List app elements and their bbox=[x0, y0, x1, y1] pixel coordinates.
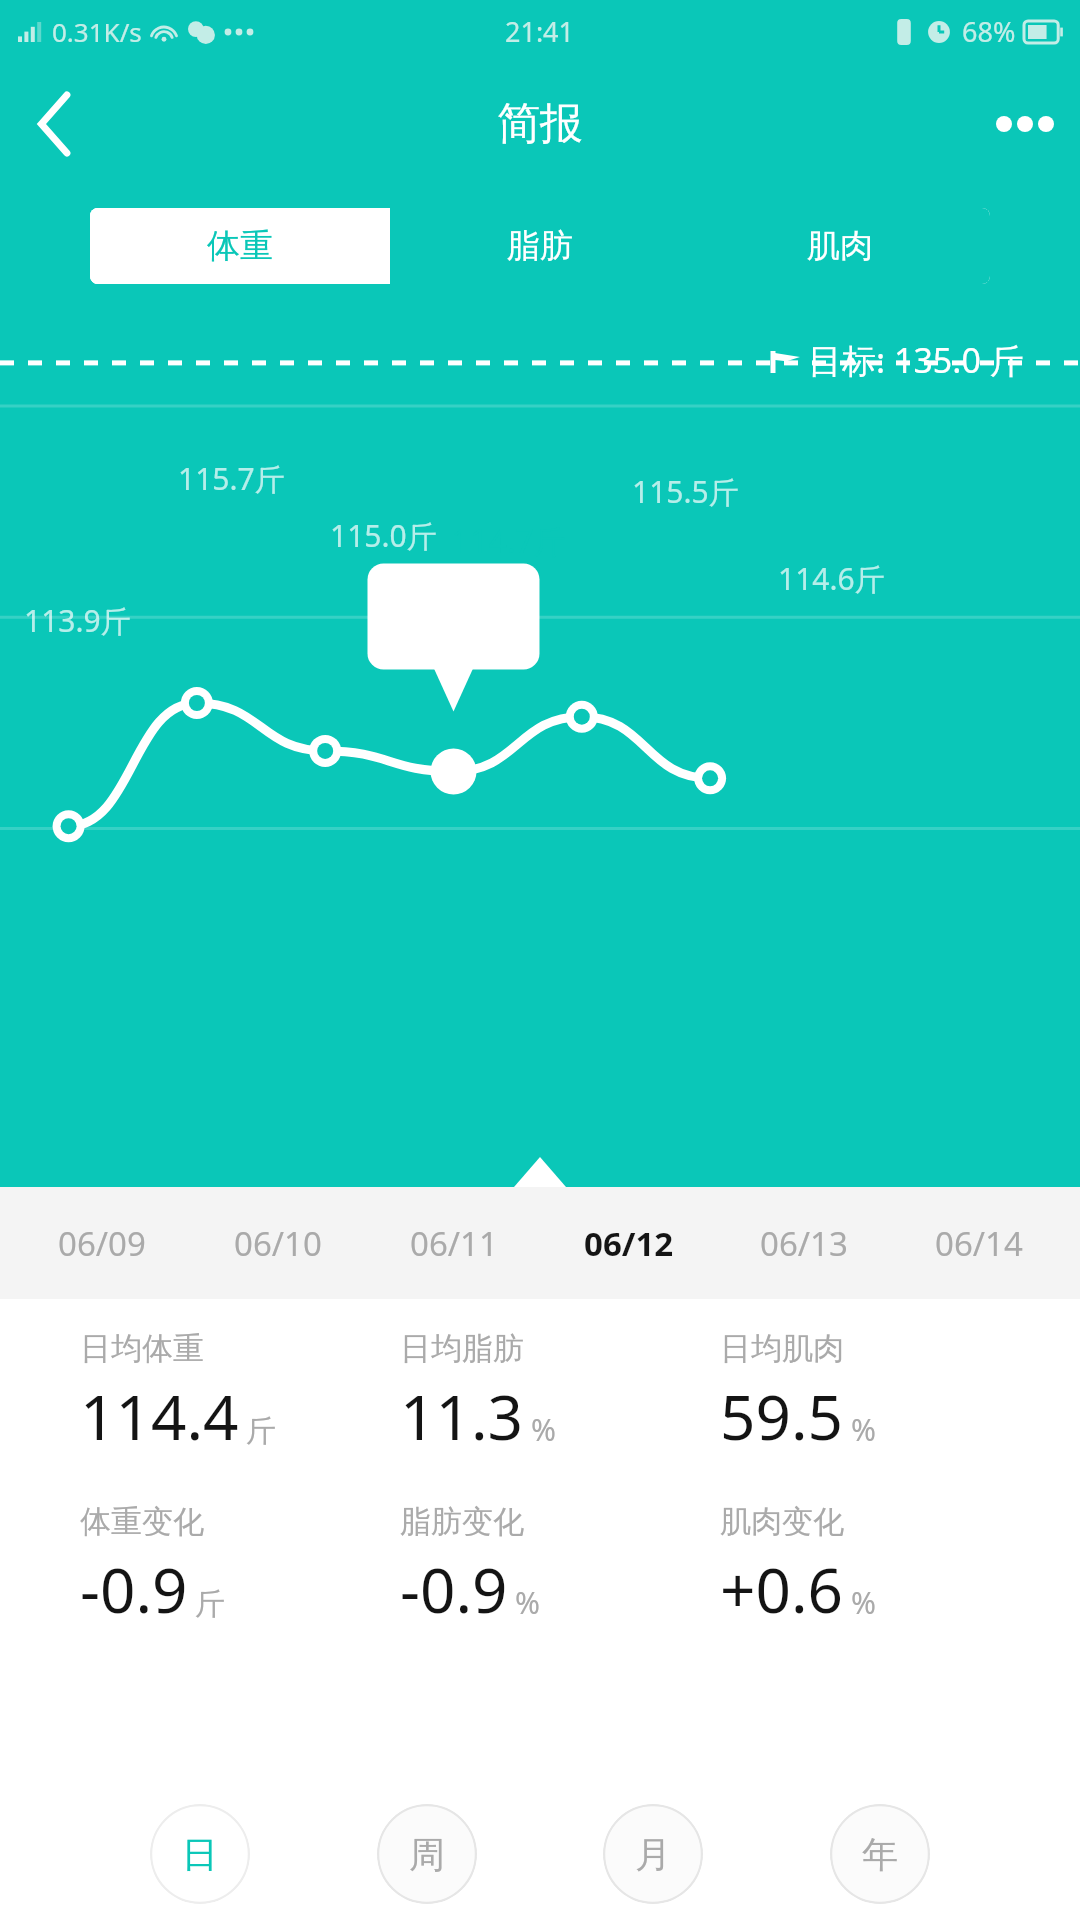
staticText: 脂肪 bbox=[507, 225, 573, 267]
staticText: 06/14 bbox=[935, 1221, 1023, 1266]
staticText: 体重 bbox=[207, 225, 273, 267]
staticText: 11.3 bbox=[400, 1374, 524, 1458]
staticText: 06/10 bbox=[234, 1221, 322, 1266]
staticText: 115.7斤 bbox=[178, 458, 285, 499]
staticText: 月 bbox=[635, 1832, 671, 1877]
staticText: 日 bbox=[182, 1832, 218, 1877]
staticText: 114.6斤 bbox=[778, 558, 885, 599]
button[interactable]: 体重 bbox=[90, 208, 390, 284]
button[interactable]: 06/14 bbox=[891, 1187, 1066, 1299]
staticText: 115.5斤 bbox=[632, 471, 739, 512]
staticText: 115.0斤 bbox=[330, 515, 437, 556]
button[interactable]: 周 bbox=[377, 1804, 477, 1904]
staticText: 06/12 bbox=[584, 1221, 674, 1266]
staticText: 68% bbox=[962, 13, 1016, 50]
staticText: % bbox=[851, 1582, 876, 1623]
staticText: 体重变化 bbox=[80, 1502, 204, 1541]
staticText: 肌肉 bbox=[807, 225, 873, 267]
staticText: 113.9斤 bbox=[24, 600, 131, 641]
staticText: 114.4 bbox=[80, 1374, 239, 1458]
staticText: % bbox=[851, 1409, 876, 1450]
staticText: 年 bbox=[862, 1832, 898, 1877]
button[interactable]: 脂肪 bbox=[392, 210, 688, 282]
button[interactable]: 06/13 bbox=[716, 1187, 891, 1299]
staticText: 日均体重 bbox=[80, 1329, 204, 1368]
staticText: % bbox=[531, 1409, 556, 1450]
button[interactable]: 06/09 bbox=[14, 1187, 190, 1299]
staticText: -0.9 bbox=[400, 1547, 508, 1631]
button[interactable]: 日 bbox=[150, 1804, 250, 1904]
staticText: -0.9 bbox=[80, 1547, 188, 1631]
button[interactable]: 月 bbox=[603, 1804, 703, 1904]
staticText: 斤 bbox=[246, 1412, 276, 1450]
staticText: 简报 bbox=[497, 97, 583, 151]
button[interactable]: Back bbox=[0, 69, 110, 179]
button[interactable]: More options bbox=[970, 69, 1080, 179]
button[interactable]: 年 bbox=[830, 1804, 930, 1904]
staticText: 脂肪变化 bbox=[400, 1502, 524, 1541]
staticText: 06/11 bbox=[410, 1221, 498, 1266]
staticText: 日均肌肉 bbox=[720, 1329, 844, 1368]
staticText: % bbox=[515, 1582, 540, 1623]
staticText: 0.31K/s bbox=[52, 14, 142, 49]
button[interactable]: 06/10 bbox=[190, 1187, 366, 1299]
staticText: 斤 bbox=[195, 1585, 225, 1623]
staticText: 日均脂肪 bbox=[400, 1329, 524, 1368]
staticText: 周 bbox=[409, 1832, 445, 1877]
staticText: 21:41 bbox=[505, 13, 575, 50]
staticText: 06/13 bbox=[760, 1221, 848, 1266]
staticText: +0.6 bbox=[720, 1547, 844, 1631]
button[interactable]: 06/11 bbox=[366, 1187, 541, 1299]
button[interactable]: 06/12 bbox=[541, 1187, 716, 1299]
staticText: 06/09 bbox=[58, 1221, 146, 1266]
staticText: 肌肉变化 bbox=[720, 1502, 844, 1541]
staticText: 目标: 135.0 斤 bbox=[808, 337, 1024, 383]
staticText: 59.5 bbox=[720, 1374, 844, 1458]
button[interactable]: 肌肉 bbox=[692, 210, 988, 282]
